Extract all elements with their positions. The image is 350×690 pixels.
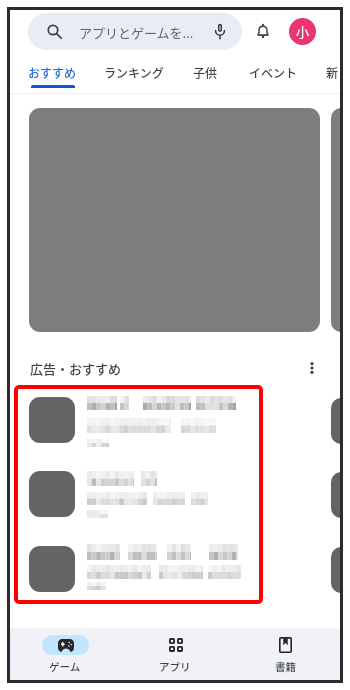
staticText: ゲーム	[49, 659, 81, 674]
staticText: 新	[326, 64, 339, 81]
button[interactable]: ゲーム	[10, 628, 120, 680]
staticText: アプリ	[159, 659, 191, 674]
button[interactable]: イベント	[237, 56, 309, 94]
button[interactable]: おすすめ	[16, 56, 88, 94]
staticText: アプリとゲームを...	[79, 23, 194, 42]
button[interactable]: アプリ	[120, 628, 230, 680]
button[interactable]	[29, 546, 75, 592]
button[interactable]: ランキング	[98, 56, 170, 94]
staticText: イベント	[249, 64, 298, 81]
button[interactable]: 書籍	[230, 628, 340, 680]
button[interactable]: Account	[289, 18, 316, 45]
button[interactable]	[29, 471, 75, 517]
button[interactable]: 新	[296, 56, 340, 94]
staticText: おすすめ	[28, 64, 77, 81]
button[interactable]	[29, 108, 320, 332]
button[interactable]	[29, 397, 75, 443]
button[interactable]: 子供	[169, 56, 241, 94]
staticText: 広告・おすすめ	[30, 359, 122, 378]
staticText: 小	[296, 22, 310, 41]
button[interactable]: More options	[303, 359, 321, 377]
staticText: 子供	[193, 64, 218, 81]
staticText: 書籍	[275, 659, 296, 674]
staticText: ランキング	[104, 64, 164, 81]
button[interactable]: アプリとゲームを...	[28, 13, 242, 50]
button[interactable]: Notifications	[254, 21, 272, 41]
